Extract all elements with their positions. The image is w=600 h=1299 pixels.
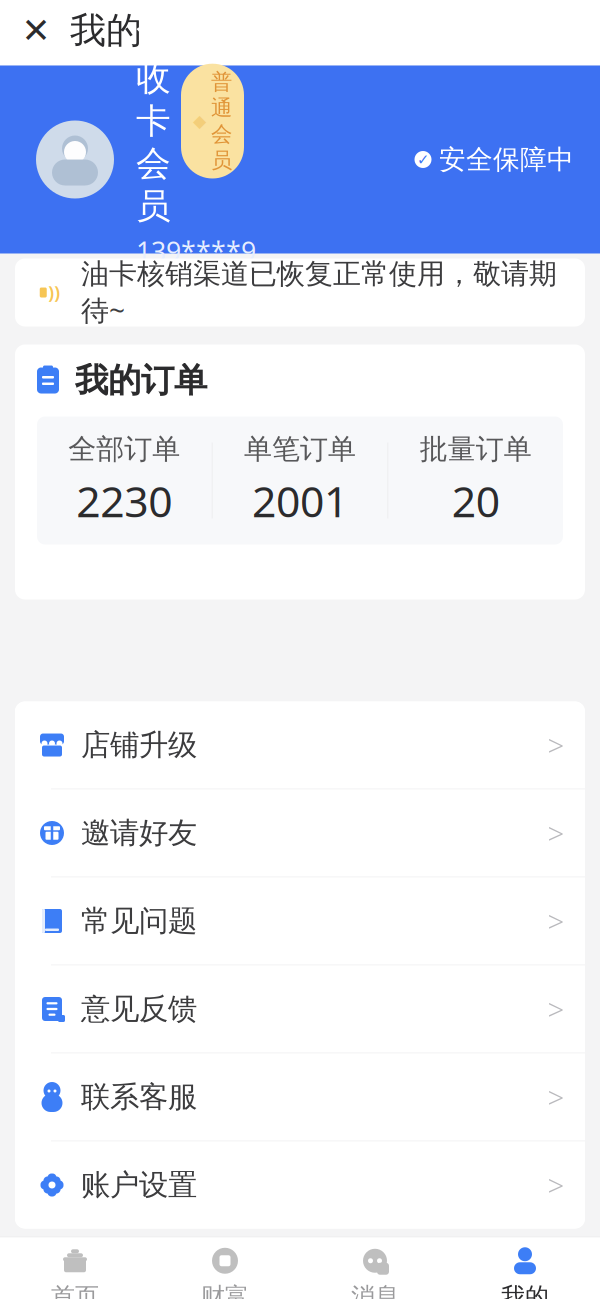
staticText: 20 — [452, 472, 500, 529]
staticText: 普通会员 — [211, 69, 232, 173]
button[interactable]: 店铺升级 — [15, 701, 585, 788]
button[interactable]: 联系客服 — [15, 1053, 585, 1140]
staticText: 消息 — [351, 1282, 399, 1299]
staticText: 安全保障中 — [439, 143, 574, 176]
button[interactable]: 我的 — [450, 1238, 600, 1299]
staticText: 意见反馈 — [81, 991, 197, 1027]
staticText: 常见问题 — [81, 903, 197, 939]
staticText: 邀请好友 — [81, 815, 197, 851]
staticText: 财富 — [201, 1282, 249, 1299]
staticText: )) — [48, 281, 60, 304]
staticText: 2001 — [252, 472, 348, 529]
staticText: 汇收卡会员 — [136, 15, 171, 227]
button[interactable]: 账户设置 — [15, 1141, 585, 1228]
staticText: > — [547, 1165, 564, 1204]
staticText: 油卡核销渠道已恢复正常使用，敬请期待~ — [81, 257, 557, 328]
staticText: 我的 — [501, 1282, 549, 1299]
staticText: > — [547, 901, 564, 940]
staticText: ◆ — [193, 111, 206, 131]
button[interactable]: 意见反馈 — [15, 965, 585, 1052]
button[interactable]: 财富 — [150, 1238, 300, 1299]
staticText: 账户设置 — [81, 1167, 197, 1203]
staticText: 联系客服 — [81, 1079, 197, 1115]
button[interactable]: 邀请好友 — [15, 789, 585, 876]
staticText: 139****9015 — [136, 233, 256, 304]
staticText: 我的订单 — [75, 360, 207, 401]
staticText: 全部订单 — [68, 432, 180, 466]
staticText: 店铺升级 — [81, 727, 197, 763]
button[interactable]: 首页 — [0, 1238, 150, 1299]
staticText: 批量订单 — [420, 432, 532, 466]
staticText: > — [547, 725, 564, 764]
staticText: > — [547, 989, 564, 1028]
button[interactable]: 关闭 — [14, 3, 58, 57]
staticText: ✓ — [417, 151, 429, 168]
button[interactable]: 消息 — [300, 1238, 450, 1299]
staticText: 单笔订单 — [244, 432, 356, 466]
button[interactable]: 全部订单 — [37, 416, 563, 544]
staticText: 2230 — [76, 472, 172, 529]
button[interactable]: 常见问题 — [15, 877, 585, 964]
staticText: > — [547, 1077, 564, 1116]
staticText: 我的 — [70, 8, 142, 53]
staticText: 首页 — [51, 1282, 99, 1299]
staticText: > — [547, 813, 564, 852]
staticText: ✕ — [21, 11, 50, 50]
